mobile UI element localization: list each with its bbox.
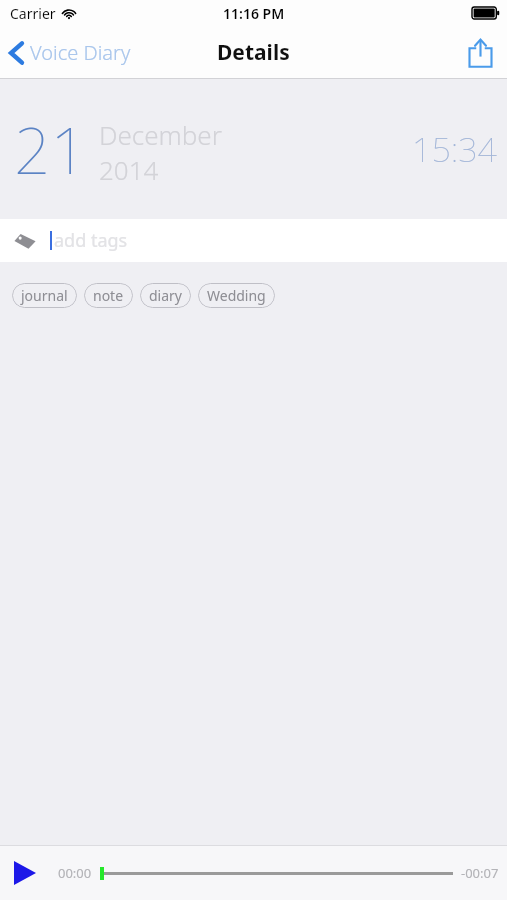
staticText: add tags — [54, 228, 128, 253]
staticText: 15:34 — [412, 126, 497, 172]
staticText: December — [99, 117, 222, 152]
button[interactable]: Share — [454, 32, 507, 74]
staticText: 00:00 — [58, 864, 92, 882]
staticText: Wedding — [207, 286, 266, 305]
staticText: 21 — [14, 106, 87, 193]
staticText: diary — [149, 286, 182, 305]
button[interactable]: journal — [12, 283, 77, 308]
staticText: note — [93, 286, 124, 305]
button[interactable]: Voice Diary — [0, 33, 141, 72]
staticText: journal — [21, 286, 68, 305]
staticText: Details — [217, 38, 290, 67]
button[interactable]: diary — [140, 283, 191, 308]
staticText: 2014 — [99, 152, 159, 187]
staticText: 11:16 PM — [223, 4, 285, 23]
button[interactable]: note — [84, 283, 133, 308]
staticText: Carrier — [10, 4, 56, 23]
staticText: -00:07 — [461, 864, 499, 882]
staticText: Voice Diary — [30, 39, 131, 66]
button[interactable]: add tags — [0, 219, 507, 262]
button[interactable]: Wedding — [198, 283, 275, 308]
button[interactable]: Play — [8, 855, 42, 891]
